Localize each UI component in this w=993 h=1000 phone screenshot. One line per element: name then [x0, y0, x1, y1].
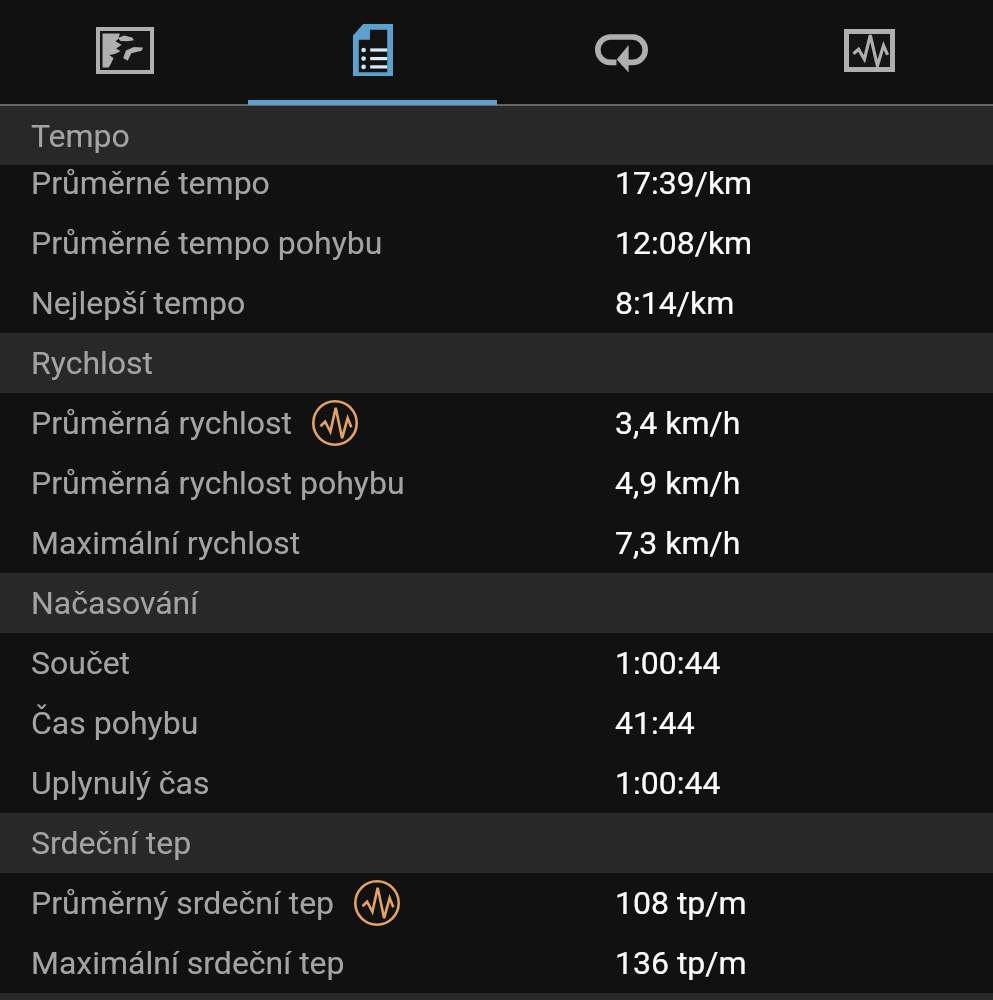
button[interactable]: Uplynulý čas — [0, 753, 993, 813]
button[interactable]: Průměrné tempo — [0, 153, 993, 213]
button[interactable]: Průměrná rychlost — [0, 393, 993, 453]
staticText: Maximální rychlost — [31, 524, 301, 562]
staticText: Uplynulý čas — [31, 764, 210, 802]
button[interactable]: Čas pohybu — [0, 693, 993, 753]
staticText: 8:14/km — [615, 284, 735, 322]
staticText: Nejlepší tempo — [31, 284, 246, 322]
staticText: 1:00:44 — [615, 644, 721, 682]
button[interactable]: Součet — [0, 633, 993, 693]
staticText: 12:08/km — [615, 224, 753, 262]
staticText: Tempo — [31, 117, 130, 155]
staticText: Průměrné tempo — [31, 164, 270, 202]
staticText: Rychlost — [31, 344, 154, 382]
button[interactable]: Maximální srdeční tep — [0, 933, 993, 993]
staticText: 136 tp/m — [615, 944, 747, 982]
button[interactable]: Průměrný srdeční tep — [0, 873, 993, 933]
staticText: Průměrná rychlost — [31, 404, 293, 442]
button[interactable]: Maximální rychlost — [0, 513, 993, 573]
button[interactable]: Nejlepší tempo — [0, 273, 993, 333]
staticText: 7,3 km/h — [615, 524, 741, 562]
staticText: Součet — [31, 644, 131, 682]
staticText: Srdeční tep — [31, 824, 192, 862]
button[interactable]: Průměrné tempo pohybu — [0, 213, 993, 273]
button[interactable]: Details — [249, 0, 497, 100]
staticText: Načasování — [31, 584, 199, 622]
staticText: 4,9 km/h — [615, 464, 741, 502]
staticText: 1:00:44 — [615, 764, 721, 802]
staticText: 108 tp/m — [615, 884, 747, 922]
button[interactable]: Graphs — [745, 0, 993, 100]
button[interactable]: Laps — [497, 0, 745, 100]
staticText: 41:44 — [615, 704, 695, 742]
button[interactable]: Map — [0, 0, 249, 100]
staticText: 17:39/km — [615, 164, 753, 202]
button[interactable]: Průměrná rychlost pohybu — [0, 453, 993, 513]
staticText: Průměrný srdeční tep — [31, 884, 335, 922]
staticText: Průměrná rychlost pohybu — [31, 464, 405, 502]
staticText: Čas pohybu — [31, 704, 199, 742]
staticText: Průměrné tempo pohybu — [31, 224, 383, 262]
staticText: 3,4 km/h — [615, 404, 741, 442]
staticText: Maximální srdeční tep — [31, 944, 345, 982]
